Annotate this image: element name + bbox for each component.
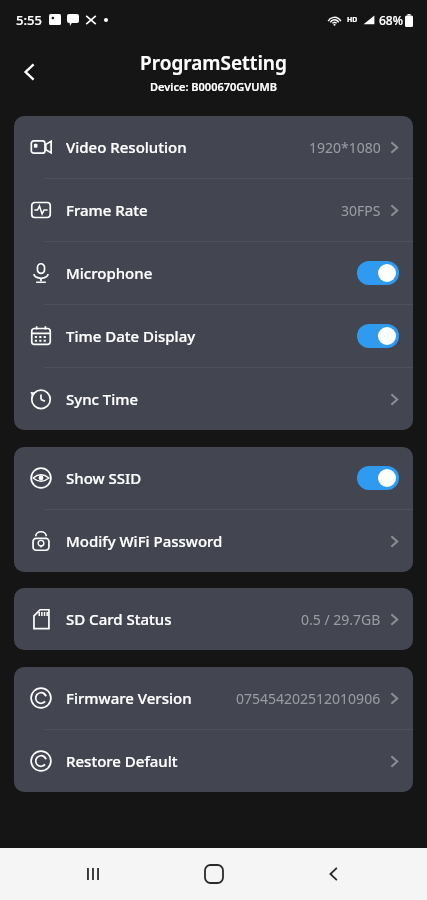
button[interactable]: Microphone (14, 242, 413, 304)
staticText: Frame Rate (66, 200, 148, 220)
staticText: Modify WiFi Password (66, 531, 223, 551)
staticText: Show SSID (66, 468, 142, 488)
button[interactable]: Frame Rate (14, 179, 413, 241)
staticText: Video Resolution (66, 137, 187, 157)
button[interactable]: SD Card Status (14, 588, 413, 650)
button[interactable]: Time Date Display (14, 305, 413, 367)
staticText: Restore Default (66, 751, 178, 771)
button[interactable]: Restore Default (14, 730, 413, 792)
button[interactable]: Recent apps (66, 848, 120, 900)
button[interactable]: Show SSID toggle (357, 466, 399, 490)
button[interactable]: Sync Time (14, 368, 413, 430)
button[interactable]: Back (307, 848, 361, 900)
staticText: 0.5 / 29.7GB (301, 610, 381, 629)
staticText: SD Card Status (66, 609, 172, 629)
button[interactable]: Time Date Display toggle (357, 324, 399, 348)
staticText: 5:55 (16, 11, 42, 29)
staticText: HD (347, 15, 358, 25)
button[interactable]: Firmware Version (14, 667, 413, 729)
staticText: 30FPS (341, 201, 381, 220)
button[interactable]: Home (187, 848, 241, 900)
button[interactable]: Modify WiFi Password (14, 510, 413, 572)
staticText: 075454202512010906 (236, 689, 381, 708)
staticText: Microphone (66, 263, 153, 283)
staticText: Firmware Version (66, 688, 192, 708)
staticText: Time Date Display (66, 326, 196, 346)
button[interactable]: Microphone toggle (357, 261, 399, 285)
button[interactable]: Back (8, 50, 52, 94)
button[interactable]: Video Resolution (14, 116, 413, 178)
staticText: ProgramSetting (140, 50, 287, 76)
button[interactable]: Show SSID (14, 447, 413, 509)
staticText: Sync Time (66, 389, 139, 409)
staticText: 1920*1080 (309, 138, 381, 157)
staticText: 68% (379, 12, 403, 28)
staticText: Device: B000670GVUMB (150, 79, 277, 94)
